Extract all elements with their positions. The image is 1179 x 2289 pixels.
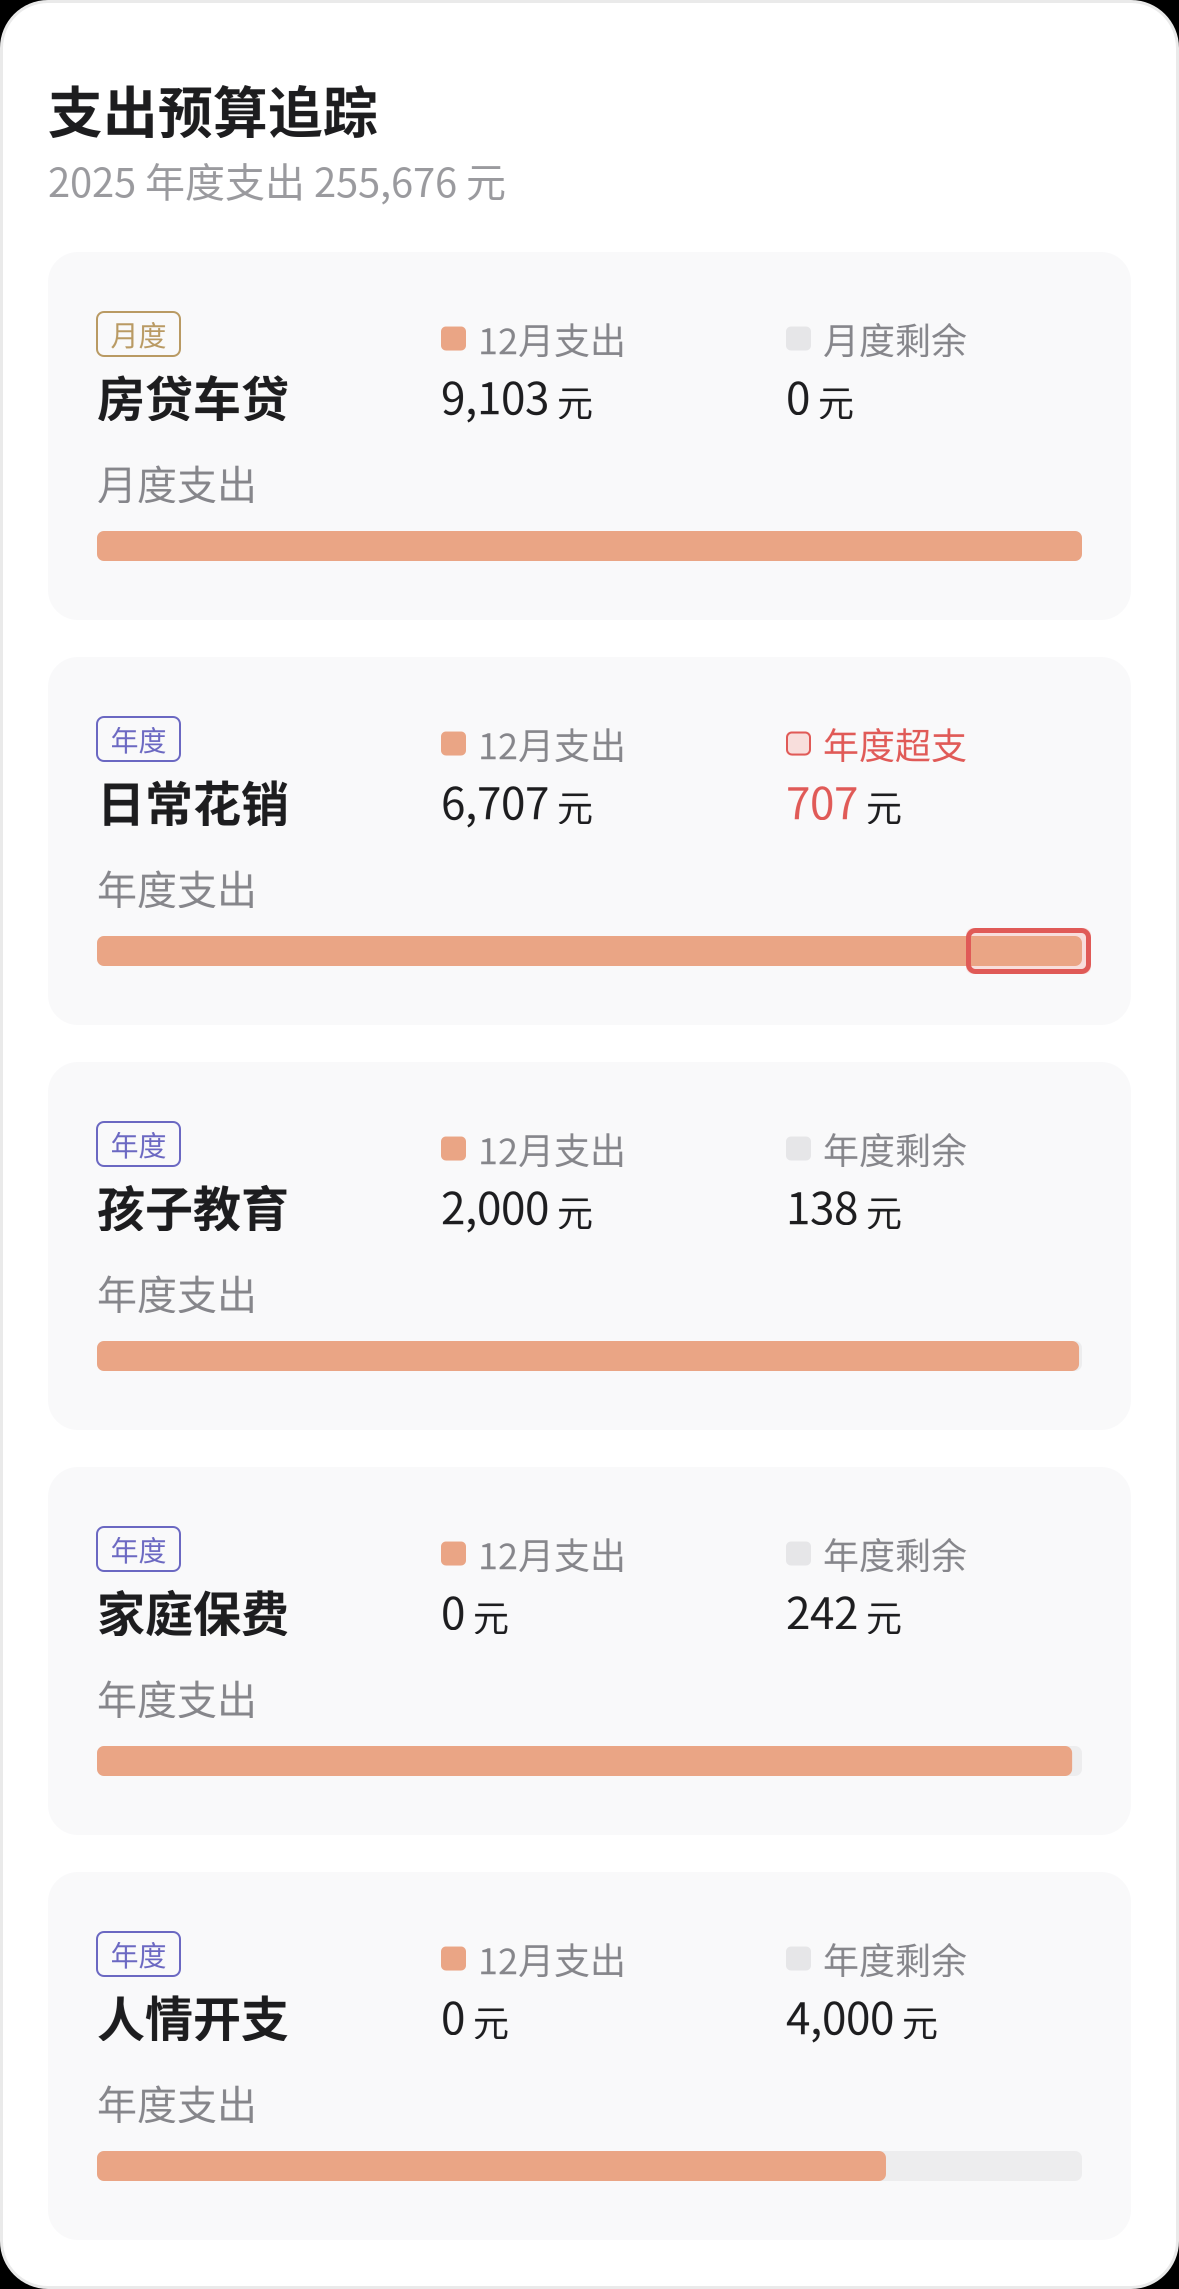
button[interactable]: 年度 人情开支，12月支出 0 元，年度剩余 4,000 元 <box>48 1872 1131 2240</box>
staticText: 年度支出 <box>97 1668 257 1726</box>
staticText: 年度剩余 <box>823 1527 967 1579</box>
staticText: 元 <box>858 1590 902 1642</box>
staticText: 0 <box>786 363 810 427</box>
staticText: 年度剩余 <box>823 1122 967 1174</box>
button[interactable]: 年度 孩子教育，12月支出 2,000 元，年度剩余 138 元 <box>48 1062 1131 1430</box>
staticText: 支出预算追踪 <box>48 69 378 148</box>
staticText: 6,707 <box>441 768 549 832</box>
staticText: 12月支出 <box>478 312 626 364</box>
staticText: 年度支出 <box>97 858 257 916</box>
staticText: 年度 <box>110 1934 166 1974</box>
staticText: 138 <box>786 1173 858 1237</box>
staticText: 月度支出 <box>97 453 257 511</box>
button[interactable]: 年度 日常花销，12月支出 6,707 元，年度超支 707 元 <box>48 657 1131 1025</box>
staticText: 4,000 <box>786 1983 894 2047</box>
staticText: 孩子教育 <box>97 1171 289 1240</box>
staticText: 年度 <box>110 1529 166 1569</box>
staticText: 0 <box>441 1983 465 2047</box>
staticText: 年度剩余 <box>823 1932 967 1984</box>
staticText: 年度支出 <box>97 2073 257 2131</box>
staticText: 年度 <box>110 1124 166 1164</box>
staticText: 2,000 <box>441 1173 549 1237</box>
staticText: 9,103 <box>441 363 549 427</box>
staticText: 日常花销 <box>97 766 289 835</box>
staticText: 年度支出 <box>97 1263 257 1321</box>
staticText: 707 <box>786 768 858 832</box>
staticText: 12月支出 <box>478 1527 626 1579</box>
staticText: 242 <box>786 1578 858 1642</box>
staticText: 元 <box>549 780 593 832</box>
staticText: 房贷车贷 <box>97 361 289 430</box>
staticText: 人情开支 <box>97 1981 289 2050</box>
staticText: 月度剩余 <box>823 312 967 364</box>
staticText: 12月支出 <box>478 1122 626 1174</box>
staticText: 元 <box>465 1995 509 2047</box>
staticText: 年度 <box>110 719 166 759</box>
button[interactable]: 月度 房贷车贷，12月支出 9,103 元，月度剩余 0 元 <box>48 252 1131 620</box>
staticText: 12月支出 <box>478 717 626 769</box>
staticText: 元 <box>894 1995 938 2047</box>
staticText: 元 <box>465 1590 509 1642</box>
staticText: 月度 <box>110 314 166 354</box>
staticText: 元 <box>858 780 902 832</box>
staticText: 元 <box>549 375 593 427</box>
staticText: 年度超支 <box>823 717 967 769</box>
staticText: 元 <box>858 1185 902 1237</box>
staticText: 2025 年度支出 255,676 元 <box>48 150 506 208</box>
staticText: 12月支出 <box>478 1932 626 1984</box>
button[interactable]: 年度 家庭保费，12月支出 0 元，年度剩余 242 元 <box>48 1467 1131 1835</box>
staticText: 家庭保费 <box>97 1576 289 1645</box>
staticText: 0 <box>441 1578 465 1642</box>
staticText: 元 <box>810 375 854 427</box>
staticText: 元 <box>549 1185 593 1237</box>
